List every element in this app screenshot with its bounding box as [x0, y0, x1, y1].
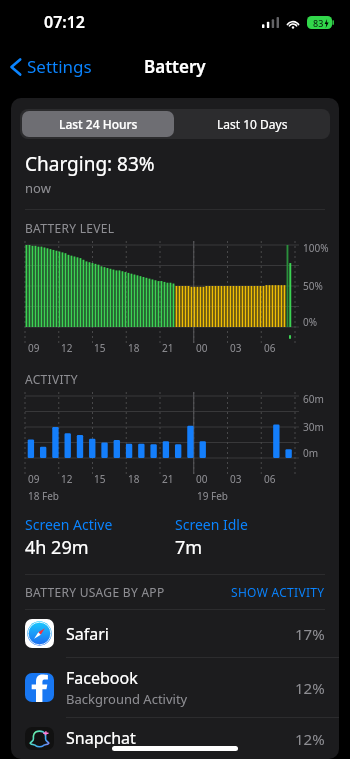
- staticText: BATTERY LEVEL: [25, 220, 115, 236]
- staticText: 12: [61, 341, 73, 355]
- staticText: 15: [94, 341, 106, 355]
- staticText: Battery: [144, 55, 206, 78]
- staticText: 00: [196, 472, 208, 486]
- staticText: now: [25, 179, 51, 197]
- button[interactable]: Safari: [11, 610, 339, 657]
- staticText: SHOW ACTIVITY: [231, 584, 325, 600]
- staticText: ACTIVITY: [25, 371, 78, 387]
- staticText: BATTERY USAGE BY APP: [25, 584, 165, 600]
- staticText: 00: [196, 341, 208, 355]
- staticText: 12%: [295, 678, 325, 698]
- button[interactable]: Snapchat: [11, 718, 339, 759]
- button[interactable]: SHOW ACTIVITY: [231, 584, 325, 600]
- staticText: 12: [61, 472, 73, 486]
- staticText: Background Activity: [66, 690, 188, 708]
- staticText: Screen Active: [25, 515, 113, 534]
- staticText: 0m: [303, 446, 319, 460]
- staticText: 60m: [303, 392, 324, 406]
- button[interactable]: Settings: [6, 49, 96, 84]
- staticText: 83: [313, 17, 324, 29]
- staticText: Snapchat: [66, 727, 136, 749]
- staticText: 21: [162, 341, 174, 355]
- staticText: 30m: [303, 420, 324, 434]
- button[interactable]: Facebook: [11, 658, 339, 717]
- staticText: 19 Feb: [197, 489, 229, 503]
- staticText: Settings: [27, 55, 92, 78]
- staticText: 100%: [303, 241, 329, 255]
- button[interactable]: Last 24 Hours: [22, 111, 174, 137]
- button[interactable]: Last 10 Days: [176, 111, 328, 137]
- staticText: 06: [264, 341, 276, 355]
- staticText: 12%: [295, 729, 325, 749]
- staticText: 06: [264, 472, 276, 486]
- staticText: 03: [230, 341, 242, 355]
- staticText: 09: [28, 472, 40, 486]
- staticText: Safari: [66, 623, 109, 645]
- staticText: 4h 29m: [25, 535, 89, 560]
- staticText: Last 24 Hours: [59, 116, 138, 132]
- staticText: Charging: 83%: [25, 151, 155, 177]
- staticText: Screen Idle: [175, 515, 248, 534]
- staticText: 21: [162, 472, 174, 486]
- staticText: 7m: [175, 535, 203, 560]
- staticText: 0%: [303, 315, 318, 329]
- staticText: 09: [28, 341, 40, 355]
- staticText: 15: [94, 472, 106, 486]
- staticText: 18 Feb: [28, 489, 60, 503]
- staticText: 50%: [303, 279, 323, 293]
- staticText: Last 10 Days: [217, 116, 288, 132]
- staticText: Facebook: [66, 667, 138, 689]
- staticText: 03: [230, 472, 242, 486]
- staticText: 18: [128, 472, 140, 486]
- staticText: 18: [128, 341, 140, 355]
- staticText: 07:12: [44, 11, 86, 33]
- staticText: 17%: [295, 624, 325, 644]
